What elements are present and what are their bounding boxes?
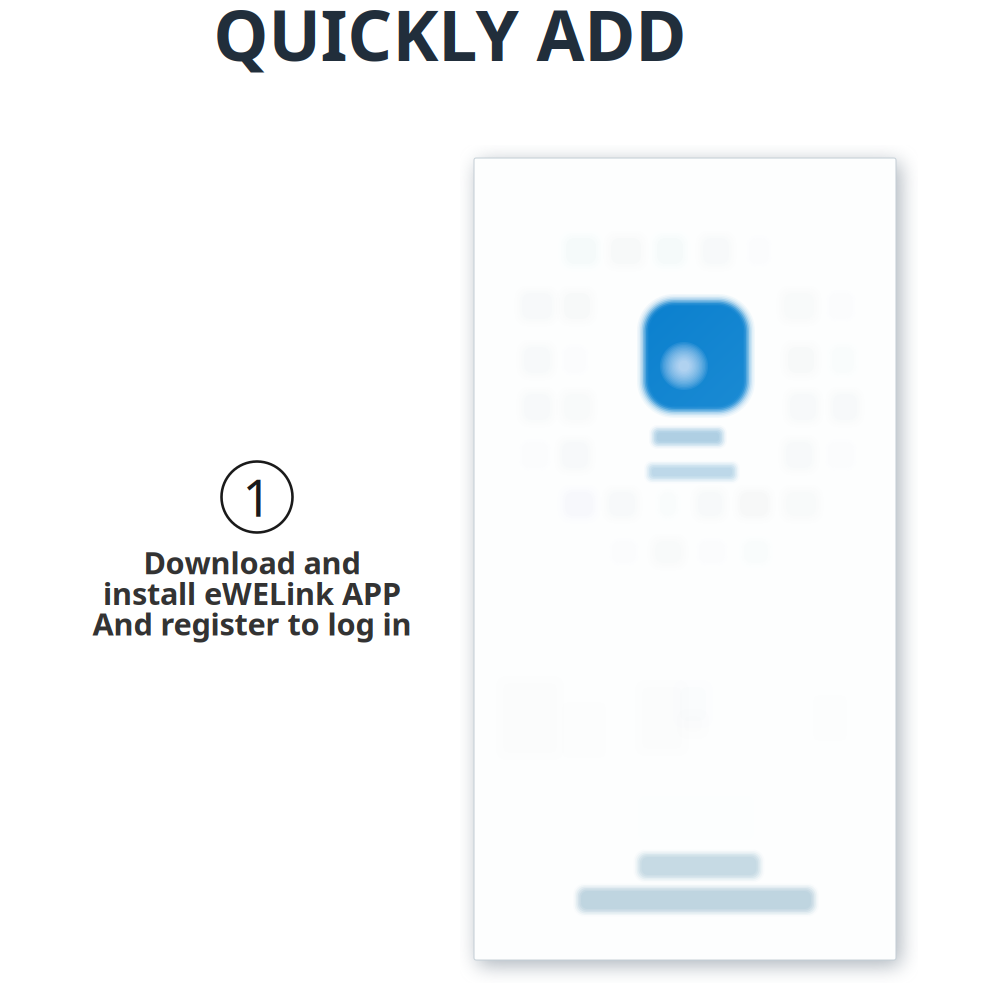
staticText: QUICKLY ADD [213, 0, 686, 80]
staticText: And register to log in [92, 603, 411, 644]
staticText: install eWELink APP [103, 573, 401, 613]
staticText: 1 [242, 463, 271, 531]
staticText: Download and [143, 542, 360, 583]
button[interactable]: eWeLink app [633, 270, 783, 426]
